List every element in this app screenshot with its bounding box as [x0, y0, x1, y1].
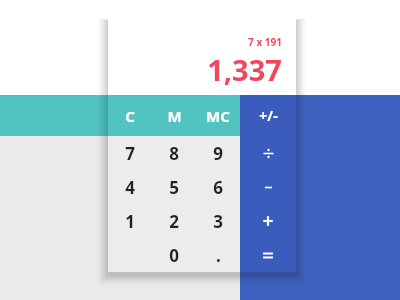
- staticText: 7: [125, 142, 135, 165]
- staticText: 0: [169, 244, 179, 267]
- staticText: 8: [169, 142, 179, 165]
- staticText: 9: [213, 142, 223, 165]
- staticText: MC: [206, 106, 230, 126]
- button[interactable]: M: [152, 95, 196, 136]
- button[interactable]: Minus: [240, 170, 296, 204]
- staticText: 1: [125, 210, 135, 233]
- button[interactable]: 5: [152, 170, 196, 204]
- button[interactable]: 6: [196, 170, 240, 204]
- button[interactable]: Divide: [240, 136, 296, 170]
- staticText: 1,337: [207, 50, 282, 89]
- button[interactable]: 2: [152, 204, 196, 238]
- button[interactable]: 4: [108, 170, 152, 204]
- staticText: C: [125, 106, 135, 126]
- button[interactable]: MC: [196, 95, 240, 136]
- staticText: M: [167, 106, 182, 126]
- button[interactable]: 7: [108, 136, 152, 170]
- button[interactable]: 8: [152, 136, 196, 170]
- button[interactable]: 9: [196, 136, 240, 170]
- button[interactable]: 0: [152, 238, 196, 272]
- button[interactable]: 3: [196, 204, 240, 238]
- button[interactable]: 1: [108, 204, 152, 238]
- staticText: +/-: [259, 106, 278, 125]
- button[interactable]: +/-: [240, 95, 296, 136]
- staticText: 6: [213, 176, 223, 199]
- staticText: 4: [125, 176, 135, 199]
- staticText: 5: [169, 176, 179, 199]
- staticText: 7 x 191: [248, 35, 282, 49]
- staticText: 3: [213, 210, 223, 233]
- button[interactable]: C: [108, 95, 152, 136]
- button[interactable]: .: [196, 238, 240, 272]
- staticText: 2: [169, 210, 179, 233]
- staticText: .: [216, 244, 221, 267]
- button[interactable]: Plus: [240, 204, 296, 238]
- button[interactable]: Equals: [240, 238, 296, 272]
